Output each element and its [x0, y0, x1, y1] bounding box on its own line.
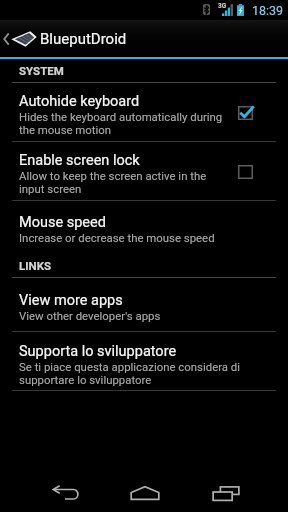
button[interactable]: Enable screen lock — [0, 142, 288, 201]
staticText: 3G — [218, 2, 227, 10]
staticText: Se ti piace questa applicazione consider… — [19, 360, 276, 386]
button[interactable]: Back — [44, 474, 85, 512]
staticText: View more apps — [19, 292, 123, 309]
button[interactable]: Recent apps — [205, 474, 246, 512]
staticText: Autohide keyboard — [19, 93, 140, 110]
staticText: Supporta lo sviluppatore — [19, 343, 177, 360]
button[interactable]: Home — [124, 474, 165, 512]
staticText: Increase or decrease the mouse speed — [19, 231, 215, 244]
staticText: BlueputDroid — [40, 30, 127, 48]
staticText: Enable screen lock — [19, 152, 140, 169]
staticText: LINKS — [19, 259, 52, 272]
button[interactable]: View more apps — [0, 278, 288, 332]
staticText: View other developer's apps — [19, 309, 161, 322]
button[interactable]: Supporta lo sviluppatore — [0, 332, 288, 391]
staticText: Allow to keep the screen active in the i… — [19, 169, 224, 195]
button[interactable]: Navigate up — [0, 20, 37, 57]
staticText: Hides the keyboard automatically during … — [19, 110, 224, 136]
button[interactable]: Mouse speed — [0, 201, 288, 249]
button[interactable]: Autohide keyboard — [0, 83, 288, 142]
staticText: 18:39 — [252, 3, 284, 18]
staticText: Mouse speed — [19, 214, 106, 231]
staticText: SYSTEM — [19, 64, 64, 77]
